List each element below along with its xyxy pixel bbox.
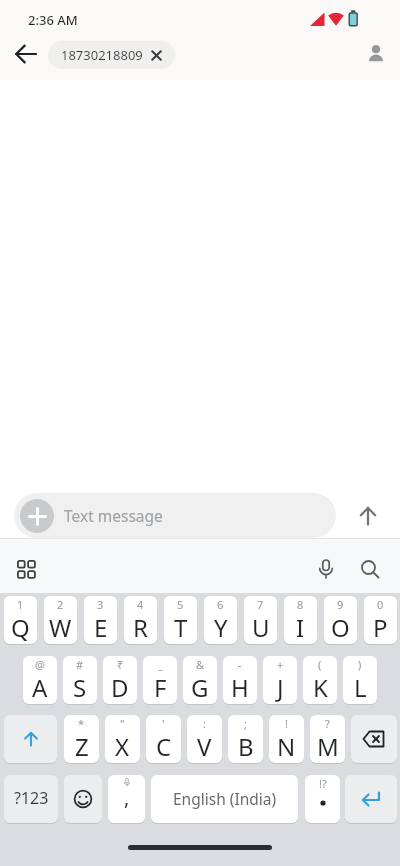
staticText: P xyxy=(373,611,388,644)
button[interactable]: 0 xyxy=(364,596,397,644)
button[interactable]: ₹ xyxy=(103,656,137,704)
staticText: !? xyxy=(319,776,327,791)
button[interactable] xyxy=(345,775,397,823)
button[interactable]: 2 xyxy=(44,596,77,644)
button[interactable]: " xyxy=(105,715,140,763)
staticText: K xyxy=(313,671,328,704)
button[interactable] xyxy=(351,715,397,763)
button[interactable]: - xyxy=(223,656,257,704)
button[interactable]: 18730218809 xyxy=(48,41,175,69)
button[interactable] xyxy=(8,36,44,72)
staticText: E xyxy=(94,611,108,644)
staticText: 6 xyxy=(217,597,224,612)
button[interactable]: ( xyxy=(303,656,337,704)
button[interactable]: ?123 xyxy=(4,775,58,823)
staticText: Text message xyxy=(64,505,163,526)
staticText: + xyxy=(277,657,284,672)
button[interactable]: @ xyxy=(23,656,57,704)
button[interactable] xyxy=(64,775,102,823)
button[interactable]: 3 xyxy=(84,596,117,644)
button[interactable]: 5 xyxy=(164,596,197,644)
staticText: ' xyxy=(162,716,165,731)
staticText: U xyxy=(252,611,270,644)
staticText: ?123 xyxy=(14,787,49,809)
button[interactable]: # xyxy=(63,656,97,704)
staticText: ! xyxy=(285,716,288,731)
staticText: I xyxy=(296,611,305,644)
button[interactable] xyxy=(8,551,44,587)
staticText: 3 xyxy=(97,597,104,612)
button[interactable]: & xyxy=(183,656,217,704)
staticText: ; xyxy=(244,716,247,731)
staticText: 7 xyxy=(257,597,264,612)
staticText: N xyxy=(277,730,296,763)
staticText: - xyxy=(238,657,242,672)
staticText: B xyxy=(238,730,254,763)
button[interactable]: English (India) xyxy=(151,775,298,823)
staticText: V xyxy=(197,730,212,763)
staticText: & xyxy=(196,657,205,672)
button[interactable]: !? xyxy=(305,775,340,823)
button[interactable] xyxy=(128,845,272,850)
staticText: ( xyxy=(318,657,322,672)
staticText: F xyxy=(154,671,167,704)
staticText: C xyxy=(156,730,172,763)
button[interactable] xyxy=(308,551,344,587)
staticText: G xyxy=(191,671,209,704)
button[interactable] xyxy=(4,715,57,763)
staticText: T xyxy=(174,611,188,644)
staticText: 18730218809 xyxy=(61,46,143,64)
staticText: Y xyxy=(214,611,228,644)
staticText: ₹ xyxy=(117,657,124,672)
button[interactable]: _ xyxy=(143,656,177,704)
staticText: A xyxy=(32,671,48,704)
staticText: 9 xyxy=(337,597,344,612)
button[interactable]: 6 xyxy=(204,596,237,644)
staticText: , xyxy=(124,784,130,811)
button[interactable] xyxy=(358,36,394,72)
staticText: English (India) xyxy=(173,788,277,809)
button[interactable]: ; xyxy=(228,715,263,763)
button[interactable]: 1 xyxy=(4,596,37,644)
staticText: 2:36 AM xyxy=(28,11,78,29)
staticText: X xyxy=(115,730,130,763)
staticText: " xyxy=(120,716,125,731)
staticText: 2 xyxy=(57,597,64,612)
button[interactable]: 8 xyxy=(284,596,317,644)
button[interactable]: 4 xyxy=(124,596,157,644)
staticText: O xyxy=(331,611,350,644)
staticText: J xyxy=(277,671,284,704)
staticText: D xyxy=(111,671,129,704)
staticText: # xyxy=(76,657,84,672)
button[interactable] xyxy=(352,551,388,587)
button[interactable]: Text message xyxy=(14,493,336,538)
staticText: H xyxy=(231,671,249,704)
staticText: _ xyxy=(158,657,163,672)
staticText: Z xyxy=(75,730,89,763)
staticText: R xyxy=(133,611,148,644)
staticText: S xyxy=(73,671,87,704)
button[interactable]: ' xyxy=(146,715,181,763)
staticText: 1 xyxy=(17,597,24,612)
button[interactable]: : xyxy=(187,715,222,763)
staticText: ? xyxy=(325,716,330,731)
button[interactable]: ! xyxy=(269,715,304,763)
staticText: 4 xyxy=(137,597,144,612)
button[interactable]: * xyxy=(64,715,99,763)
staticText: 0 xyxy=(377,597,384,612)
button[interactable]: + xyxy=(263,656,297,704)
button[interactable]: ) xyxy=(343,656,377,704)
staticText: : xyxy=(203,716,206,731)
button[interactable] xyxy=(350,498,386,534)
staticText: * xyxy=(78,716,85,731)
button[interactable] xyxy=(20,499,54,533)
staticText: L xyxy=(354,671,367,704)
button[interactable]: 7 xyxy=(244,596,277,644)
staticText: M xyxy=(317,730,339,763)
button[interactable]: , xyxy=(108,775,145,823)
staticText: 8 xyxy=(297,597,304,612)
staticText: W xyxy=(49,611,72,644)
staticText: Q xyxy=(11,611,30,644)
button[interactable]: 9 xyxy=(324,596,357,644)
button[interactable]: ? xyxy=(310,715,345,763)
